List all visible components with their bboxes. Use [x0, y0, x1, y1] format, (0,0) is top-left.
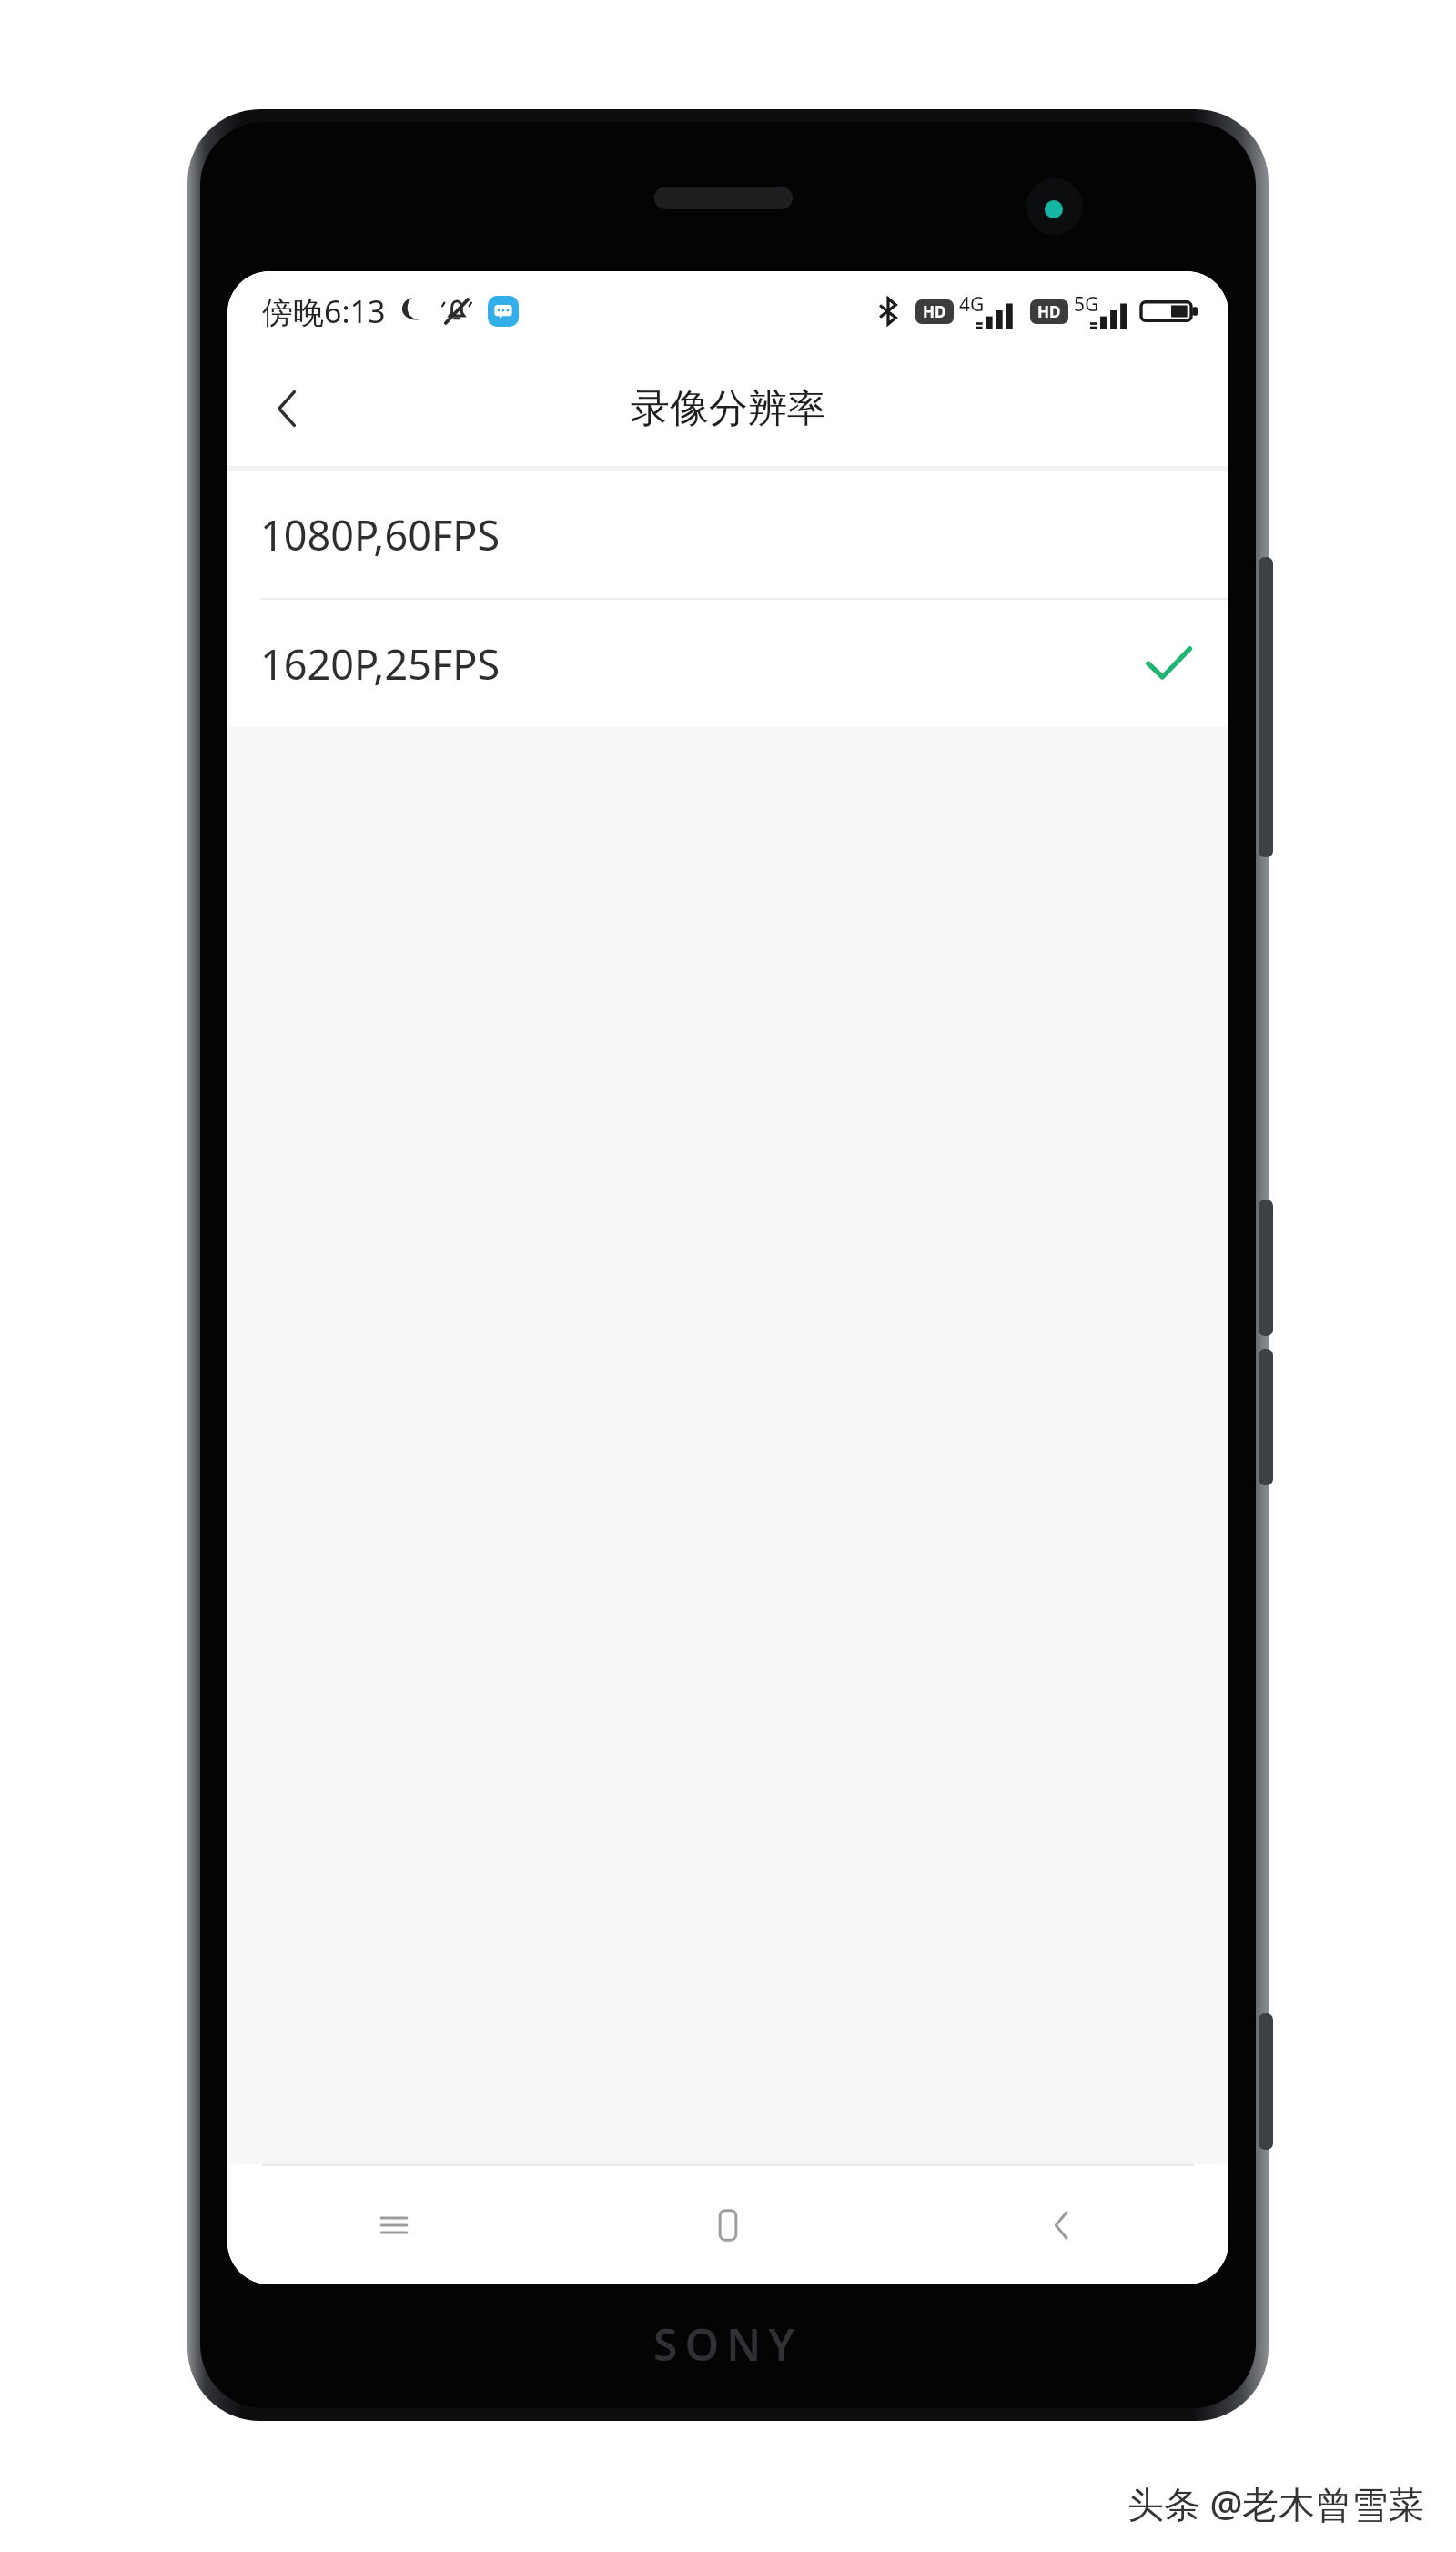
button[interactable]: 1620P,25FPS: [227, 600, 1228, 727]
staticText: HD: [1037, 301, 1061, 322]
button[interactable]: Home: [561, 2166, 895, 2284]
staticText: 1080P,60FPS: [260, 507, 500, 562]
staticText: HD: [923, 301, 946, 322]
button[interactable]: Back: [242, 363, 333, 454]
button[interactable]: Recent apps: [227, 2166, 561, 2284]
staticText: SONY: [653, 2314, 803, 2374]
staticText: 4G: [959, 291, 985, 318]
staticText: 傍晚6:13: [262, 290, 386, 332]
button[interactable]: 1080P,60FPS: [227, 471, 1228, 598]
staticText: 录像分辨率: [631, 384, 826, 433]
button[interactable]: Back: [895, 2166, 1228, 2284]
staticText: 1620P,25FPS: [260, 636, 500, 692]
staticText: 头条 @老木曾雪菜: [1127, 2478, 1425, 2528]
staticText: 5G: [1074, 291, 1099, 318]
